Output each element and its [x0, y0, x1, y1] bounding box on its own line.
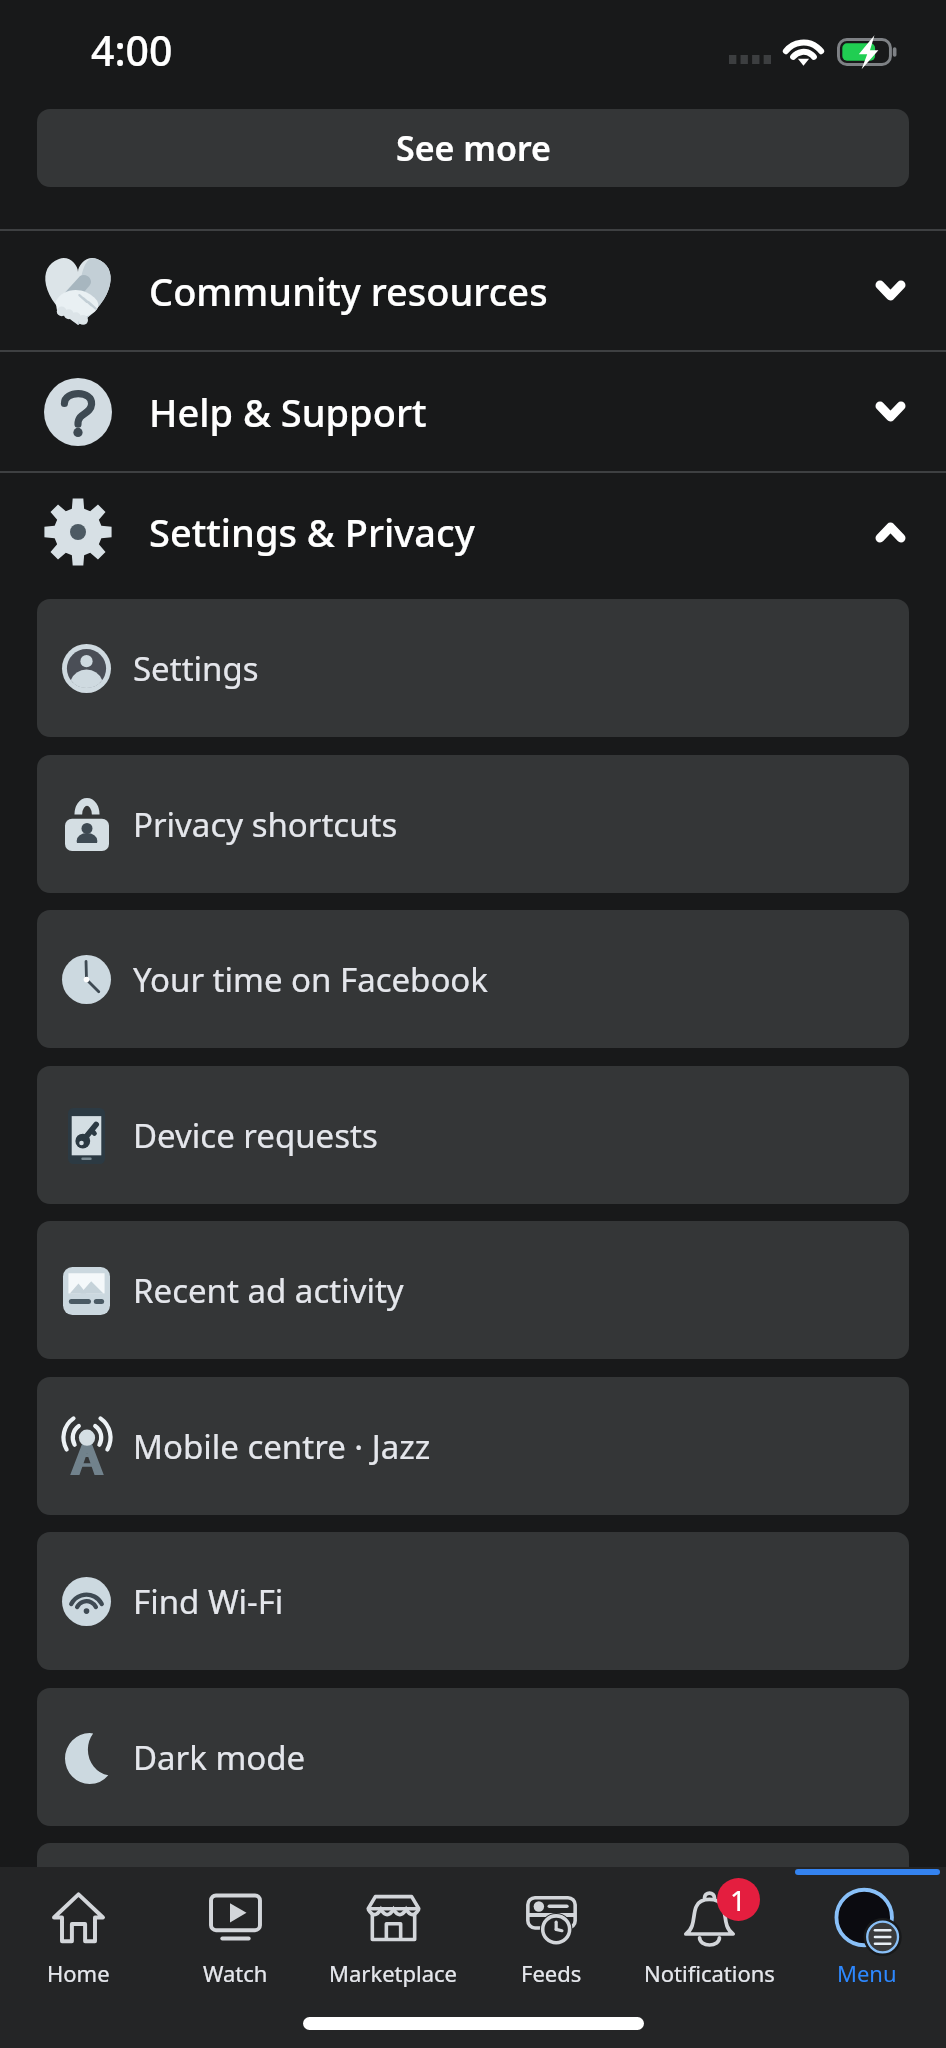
button[interactable]: Help & Support [0, 352, 946, 471]
button[interactable]: Feeds [472, 1867, 630, 2011]
staticText: Find Wi-Fi [133, 1579, 284, 1624]
staticText: Watch [203, 1958, 268, 1988]
button[interactable]: Settings & Privacy [0, 474, 946, 590]
staticText: Home [47, 1958, 110, 1988]
other: Marketplace [366, 1890, 421, 1945]
button[interactable]: See more [37, 109, 909, 187]
staticText: Settings [133, 646, 259, 691]
other: Home [51, 1890, 106, 1945]
other: Watch [208, 1890, 263, 1945]
staticText: Menu [837, 1958, 897, 1988]
staticText: Settings & Privacy [149, 506, 880, 558]
staticText: See more [396, 125, 551, 171]
staticText: Recent ad activity [133, 1268, 404, 1313]
button[interactable]: Watch [157, 1867, 314, 2011]
button[interactable]: Menu [788, 1867, 946, 2011]
button[interactable]: Marketplace [314, 1867, 472, 2011]
button[interactable]: Privacy shortcuts [37, 755, 909, 893]
button[interactable]: Recent ad activity [37, 1221, 909, 1359]
button[interactable]: Find Wi-Fi [37, 1532, 909, 1670]
staticText: 4:00 [91, 22, 173, 78]
staticText: Marketplace [329, 1958, 457, 1988]
staticText: Help & Support [149, 386, 880, 438]
button[interactable]: Home [0, 1867, 157, 2011]
button[interactable] [37, 1843, 909, 1981]
button[interactable]: Notifications [630, 1867, 788, 2011]
staticText: 1 [730, 1881, 747, 1919]
staticText: Mobile centre · Jazz [133, 1424, 431, 1469]
button[interactable]: Community resources [0, 231, 946, 350]
button[interactable]: Your time on Facebook [37, 910, 909, 1048]
other: Feeds [524, 1890, 579, 1945]
staticText: Your time on Facebook [133, 957, 488, 1002]
staticText: Dark mode [133, 1735, 306, 1780]
staticText: Notifications [644, 1958, 775, 1988]
button[interactable]: Settings [37, 599, 909, 737]
other: Menu [840, 1890, 895, 1945]
staticText: Feeds [521, 1958, 582, 1988]
staticText: Community resources [149, 265, 880, 317]
button[interactable]: Device requests [37, 1066, 909, 1204]
other: Notifications [682, 1890, 737, 1945]
button[interactable]: Mobile centre · Jazz [37, 1377, 909, 1515]
staticText: Privacy shortcuts [133, 802, 398, 847]
button[interactable]: Dark mode [37, 1688, 909, 1826]
staticText: Device requests [133, 1113, 378, 1158]
